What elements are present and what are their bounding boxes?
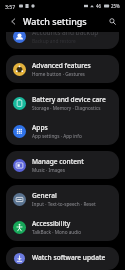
staticText: TalkBack · Mono audio: [32, 229, 82, 235]
button[interactable]: Advanced features: [6, 55, 119, 83]
button[interactable]: Watch software update: [6, 247, 119, 270]
staticText: Watch software update: [32, 253, 106, 262]
staticText: Manage content: [32, 157, 84, 166]
staticText: Apps: [32, 123, 48, 132]
staticText: 46: [96, 3, 102, 9]
button[interactable]: Apps: [6, 117, 119, 145]
staticText: Music · Images: [32, 167, 65, 173]
button[interactable]: Accessibility: [6, 213, 119, 241]
button[interactable]: Battery and device care: [6, 89, 119, 117]
button[interactable]: Search: [106, 15, 118, 27]
staticText: App settings · App info: [32, 133, 82, 139]
staticText: 25%: [111, 3, 120, 9]
staticText: Battery and device care: [32, 95, 106, 104]
staticText: Watch settings: [23, 15, 87, 27]
button[interactable]: Accounts and backup: [6, 32, 119, 49]
staticText: Accounts and backup: [32, 32, 99, 37]
button[interactable]: General: [6, 185, 119, 213]
button[interactable]: Back: [7, 15, 19, 27]
staticText: Storage · Memory · Diagnostics: [32, 105, 101, 111]
staticText: Home button · Gestures: [32, 71, 85, 77]
staticText: Accessibility: [32, 219, 71, 228]
staticText: Advanced features: [32, 61, 91, 70]
staticText: 3:57: [5, 3, 16, 10]
staticText: Input · Text-to-speech · Reset: [32, 201, 96, 207]
staticText: Backup and restore: [32, 38, 76, 45]
button[interactable]: Manage content: [6, 151, 119, 179]
staticText: General: [32, 191, 57, 200]
